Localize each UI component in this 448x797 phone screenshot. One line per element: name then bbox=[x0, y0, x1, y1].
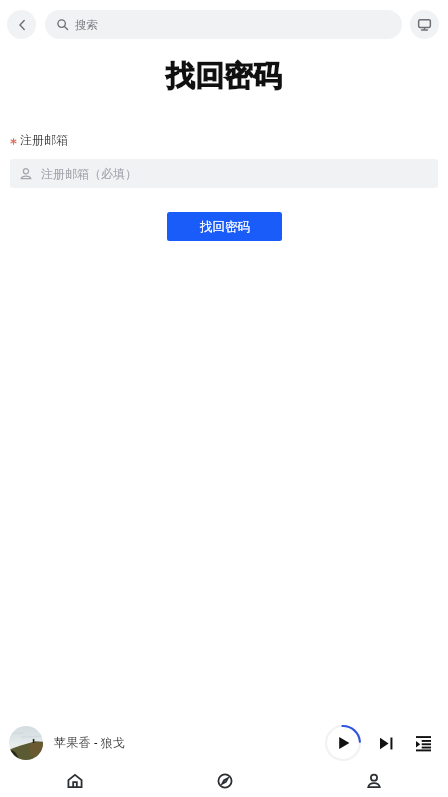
button[interactable]: Play bbox=[325, 725, 361, 761]
button[interactable]: Next track bbox=[374, 731, 398, 755]
button[interactable]: Cast to device bbox=[410, 10, 439, 39]
button[interactable]: Explore bbox=[150, 764, 299, 797]
staticText: 找回密码 bbox=[200, 219, 250, 235]
button[interactable]: Playlist bbox=[411, 731, 435, 755]
button[interactable]: Profile bbox=[299, 764, 448, 797]
staticText: 注册邮箱（必填） bbox=[41, 166, 137, 181]
button[interactable]: Home bbox=[0, 764, 150, 797]
button[interactable]: 搜索 bbox=[45, 10, 402, 39]
button[interactable]: 注册邮箱（必填） bbox=[10, 159, 438, 188]
staticText: 苹果香 - 狼戈 bbox=[54, 734, 126, 751]
staticText: 注册邮箱 bbox=[20, 132, 68, 147]
button[interactable]: 找回密码 bbox=[167, 212, 282, 241]
staticText: 搜索 bbox=[75, 18, 98, 32]
button[interactable]: Back bbox=[7, 10, 36, 39]
staticText: 找回密码 bbox=[0, 58, 448, 95]
